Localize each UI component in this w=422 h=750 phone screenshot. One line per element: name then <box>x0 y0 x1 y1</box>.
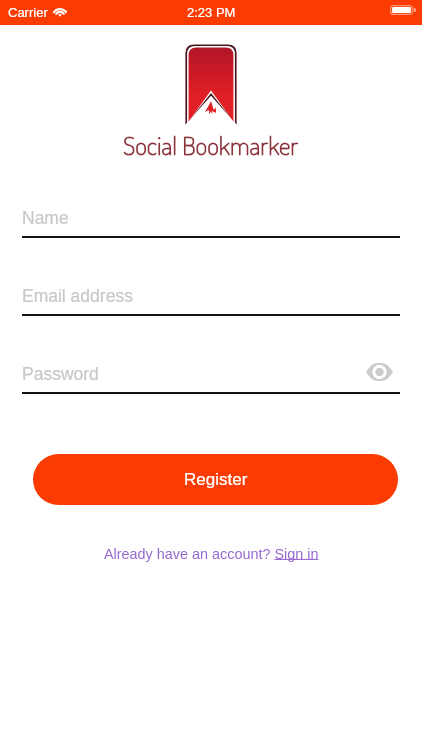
staticText: Carrier <box>8 5 48 20</box>
staticText: Social Bookmarker <box>123 129 299 161</box>
button[interactable]: Email address <box>22 280 400 316</box>
button[interactable]: Show password <box>362 355 396 389</box>
button[interactable]: Name <box>22 202 400 238</box>
staticText: Password <box>22 364 99 384</box>
button[interactable]: Already have an account? Sign in <box>104 546 319 562</box>
button[interactable]: Register <box>33 454 398 505</box>
staticText: Name <box>22 208 69 228</box>
staticText: 2:23 PM <box>187 5 236 20</box>
button[interactable]: Password <box>22 358 400 394</box>
staticText: Register <box>184 470 248 489</box>
staticText: Email address <box>22 286 133 306</box>
